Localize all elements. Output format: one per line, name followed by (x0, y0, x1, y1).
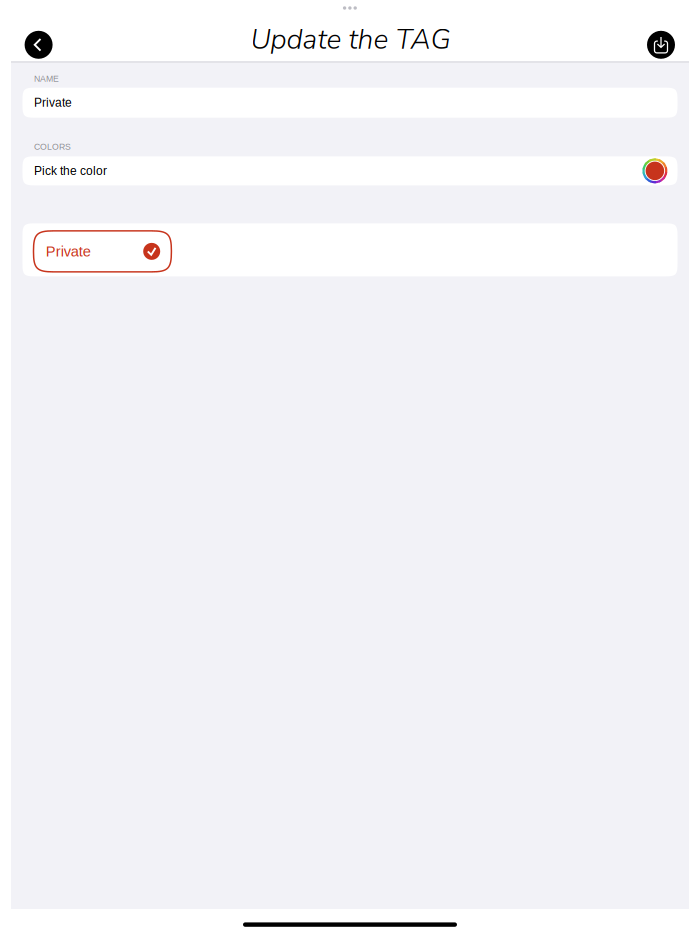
button[interactable]: Save (647, 31, 675, 59)
staticText: NAME (34, 74, 59, 84)
staticText: Private (46, 243, 91, 260)
staticText: COLORS (34, 142, 71, 151)
button[interactable]: Private (33, 231, 171, 272)
button[interactable]: Pick the colour (640, 156, 669, 185)
staticText: Update the TAG (250, 20, 450, 59)
button[interactable]: Back (25, 31, 53, 59)
staticText: Private (34, 96, 72, 109)
staticText: Pick the color (34, 164, 107, 178)
